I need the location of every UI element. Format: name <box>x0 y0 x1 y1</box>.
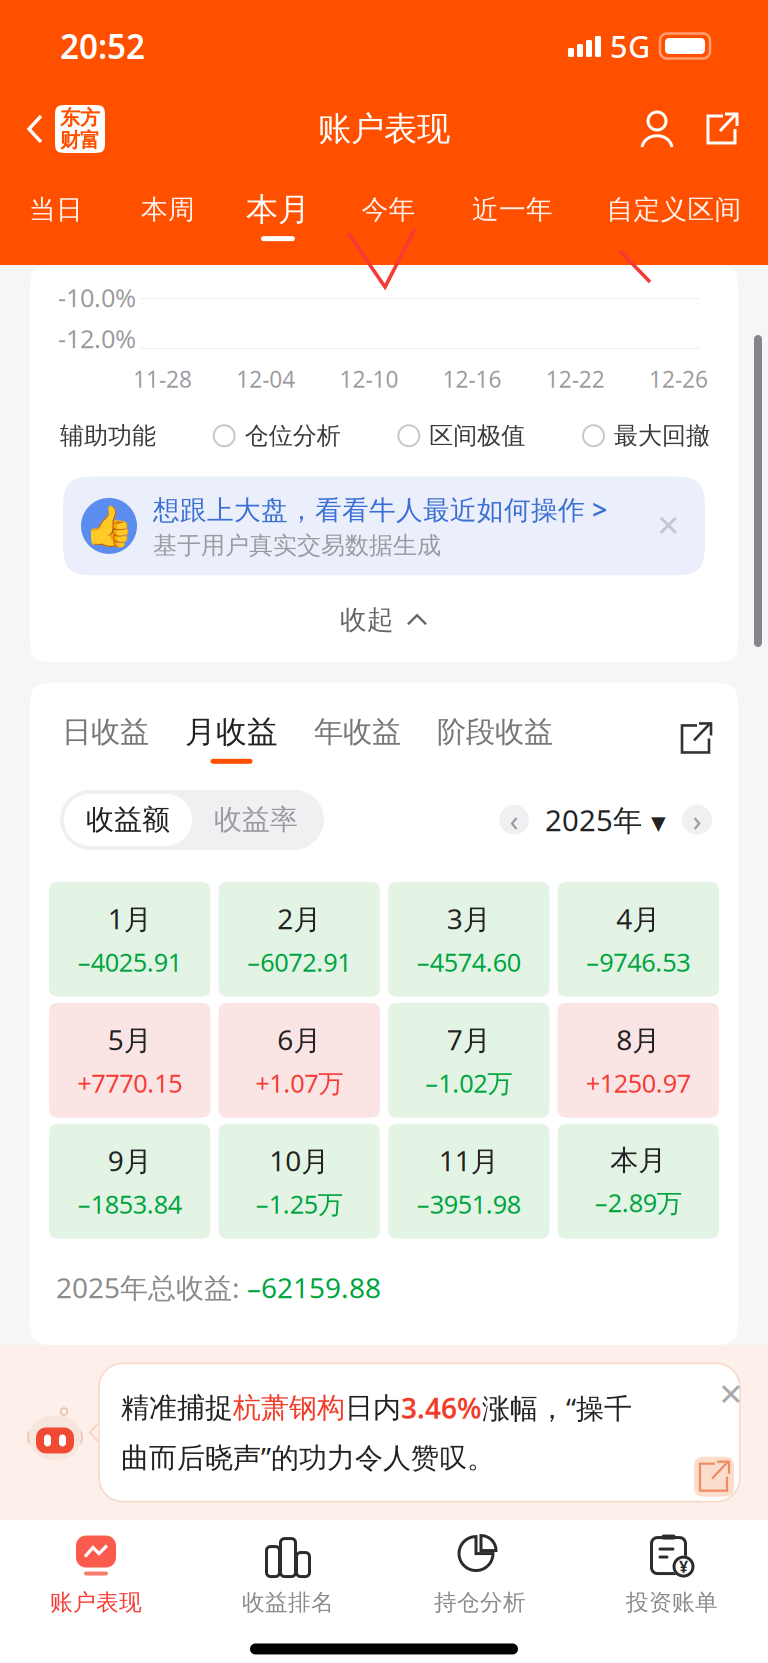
staticText: 最大回撤 <box>614 421 710 450</box>
staticText: 2025年总收益: <box>56 1269 247 1306</box>
button[interactable]: 4月 <box>557 882 719 997</box>
staticText: 3.46% <box>401 1389 482 1426</box>
button[interactable]: 3月 <box>388 882 549 997</box>
staticText: 收益排名 <box>242 1589 334 1616</box>
button[interactable]: 阶段收益 <box>437 714 589 763</box>
staticText: 收起 <box>340 603 394 636</box>
button[interactable]: 9月 <box>49 1124 210 1239</box>
staticText: ‹ <box>509 800 518 839</box>
staticText: 2025年 ▾ <box>545 800 666 839</box>
staticText: –1853.84 <box>78 1187 182 1221</box>
button[interactable]: 用户 <box>628 103 686 155</box>
staticText: 基于用户真实交易数据生成 <box>153 531 441 560</box>
staticText: 👍 <box>84 503 134 549</box>
staticText: 4月 <box>616 900 660 937</box>
button[interactable]: 关闭 <box>718 1363 768 1412</box>
staticText: –1.25万 <box>256 1187 343 1221</box>
staticText: 本周 <box>141 193 195 226</box>
button[interactable]: 今年 <box>332 166 445 265</box>
button[interactable]: 分享 <box>686 103 768 155</box>
staticText: 年收益 <box>314 714 401 750</box>
button[interactable]: 分享 <box>676 718 716 758</box>
staticText: 当日 <box>29 193 83 226</box>
staticText: 12-10 <box>339 364 398 394</box>
staticText: › <box>692 800 701 839</box>
staticText: 今年 <box>361 193 415 226</box>
button[interactable]: 仓位分析 <box>214 421 341 450</box>
staticText: 日收益 <box>62 714 149 750</box>
staticText: ¥ <box>679 1556 688 1577</box>
staticText: –4025.91 <box>78 945 182 979</box>
staticText: 投资账单 <box>626 1589 718 1616</box>
button[interactable]: 日收益 <box>62 714 185 763</box>
staticText: 杭萧钢构 <box>233 1391 345 1425</box>
button[interactable]: 最大回撤 <box>583 421 710 450</box>
button[interactable]: 10月 <box>218 1124 380 1239</box>
button[interactable]: 年收益 <box>314 714 437 763</box>
staticText: -12.0% <box>58 322 136 355</box>
staticText: 区间极值 <box>429 421 525 450</box>
staticText: 持仓分析 <box>434 1589 526 1616</box>
staticText: 自定义区间 <box>606 193 741 226</box>
staticText: 收益额 <box>86 803 170 837</box>
button[interactable]: 5月 <box>49 1003 210 1118</box>
staticText: 11-28 <box>133 364 192 394</box>
staticText: 5G <box>610 26 650 66</box>
staticText: 辅助功能 <box>60 421 156 450</box>
button[interactable]: 持仓分析 <box>384 1534 576 1616</box>
staticText: +1250.97 <box>586 1066 691 1100</box>
button[interactable]: 月收益 <box>185 713 314 764</box>
button[interactable]: 本周 <box>112 166 224 265</box>
button[interactable]: 账户表现 <box>0 1534 192 1616</box>
staticText: 12-26 <box>649 364 708 394</box>
staticText: –1.02万 <box>425 1066 512 1100</box>
button[interactable]: 1月 <box>49 882 210 997</box>
staticText: 账户表现 <box>50 1589 142 1616</box>
staticText: 阶段收益 <box>437 714 553 750</box>
staticText: 3月 <box>447 900 491 937</box>
button[interactable]: ¥ <box>576 1534 768 1616</box>
button[interactable]: 自定义区间 <box>580 166 768 265</box>
staticText: 9月 <box>108 1142 152 1179</box>
staticText: –4574.60 <box>417 945 521 979</box>
staticText: 12-16 <box>443 364 502 394</box>
button[interactable]: 收起 <box>30 575 738 662</box>
staticText: 涨幅，“操千 <box>482 1389 632 1426</box>
staticText: 8月 <box>616 1021 660 1058</box>
button[interactable]: 11月 <box>388 1124 549 1239</box>
button[interactable]: 区间极值 <box>398 421 525 450</box>
staticText: 11月 <box>439 1142 499 1179</box>
button[interactable]: 当日 <box>0 166 112 265</box>
staticText: –6072.91 <box>247 945 351 979</box>
staticText: 月收益 <box>185 713 278 751</box>
staticText: 仓位分析 <box>245 421 341 450</box>
staticText: 12-04 <box>236 364 295 394</box>
button[interactable]: 8月 <box>557 1003 719 1118</box>
button[interactable]: 近一年 <box>445 166 580 265</box>
button[interactable]: 收益排名 <box>192 1534 384 1616</box>
staticText: 想跟上大盘，看看牛人最近如何操作 > <box>153 491 607 527</box>
staticText: 10月 <box>269 1142 329 1179</box>
staticText: ✕ <box>718 1377 744 1412</box>
staticText: ✕ <box>656 509 681 543</box>
staticText: 近一年 <box>472 193 553 226</box>
staticText: –62159.88 <box>247 1269 381 1306</box>
button[interactable]: 本月 <box>224 166 332 265</box>
button[interactable]: 返回 <box>0 99 113 159</box>
button[interactable]: 7月 <box>388 1003 549 1118</box>
staticText: 2月 <box>277 900 321 937</box>
button[interactable]: 分享 <box>694 1457 734 1497</box>
staticText: 账户表现 <box>318 108 450 149</box>
staticText: –9746.53 <box>586 945 690 979</box>
button[interactable]: 6月 <box>218 1003 380 1118</box>
staticText: 12-22 <box>546 364 605 394</box>
staticText: –3951.98 <box>417 1187 521 1221</box>
staticText: 5月 <box>108 1021 152 1058</box>
button[interactable]: 2月 <box>218 882 380 997</box>
button[interactable]: 本月 <box>557 1124 719 1239</box>
staticText: 6月 <box>277 1021 321 1058</box>
staticText: 7月 <box>447 1021 491 1058</box>
staticText: 东方 <box>60 105 100 130</box>
staticText: 精准捕捉 <box>121 1391 233 1425</box>
staticText: +1.07万 <box>255 1066 343 1100</box>
